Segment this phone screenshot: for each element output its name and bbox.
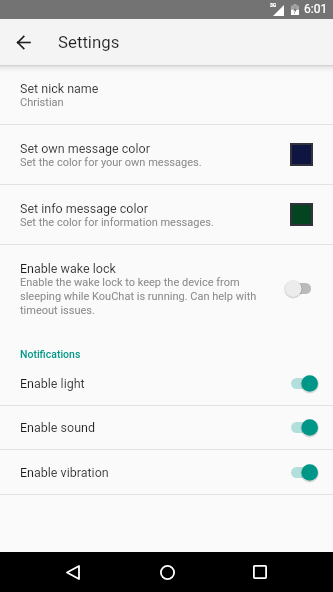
button[interactable]: Set nick name	[0, 65, 333, 124]
staticText: Set info message color	[20, 201, 148, 216]
button[interactable]: Back	[49, 552, 97, 592]
staticText: Christian	[20, 96, 64, 109]
staticText: 3G	[270, 2, 277, 8]
button[interactable]: Pick colour	[290, 143, 313, 166]
staticText: Set own message color	[20, 141, 150, 156]
staticText: Enable vibration	[20, 465, 109, 480]
staticText: Notifications	[20, 348, 81, 360]
staticText: Set the color for your own messages.	[20, 156, 202, 169]
button[interactable]: Toggle setting	[285, 375, 318, 392]
staticText: Enable sound	[20, 420, 96, 435]
staticText: Enable the wake lock to keep the device …	[20, 276, 277, 316]
button[interactable]: Recent apps	[236, 552, 284, 592]
button[interactable]: Set own message color	[0, 125, 333, 184]
button[interactable]: Enable sound	[0, 406, 333, 449]
button[interactable]: Navigate up	[7, 26, 40, 59]
button[interactable]: Toggle setting	[285, 280, 318, 297]
button[interactable]: Set info message color	[0, 185, 333, 244]
staticText: Enable light	[20, 376, 85, 391]
button[interactable]: Home	[143, 552, 191, 592]
button[interactable]: Enable vibration	[0, 450, 333, 494]
staticText: Settings	[58, 32, 120, 52]
button[interactable]: Pick colour	[290, 203, 313, 226]
button[interactable]: Enable wake lock	[0, 245, 333, 332]
staticText: 6:01	[304, 2, 328, 16]
button[interactable]: Toggle setting	[285, 464, 318, 481]
staticText: Enable wake lock	[20, 261, 116, 276]
staticText: Set nick name	[20, 81, 99, 96]
staticText: Set the color for information messages.	[20, 216, 214, 229]
button[interactable]: Toggle setting	[285, 419, 318, 436]
button[interactable]: Enable light	[0, 361, 333, 405]
